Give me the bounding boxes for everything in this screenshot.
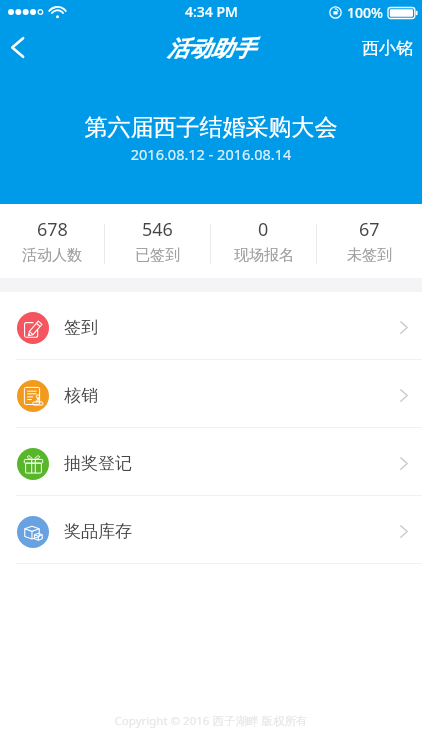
button[interactable]: 签到 [0, 292, 422, 359]
staticText: 签到 [64, 317, 98, 338]
button[interactable]: 678 [0, 204, 104, 278]
button[interactable]: 546 [105, 204, 210, 278]
button[interactable]: 奖品库存 [0, 496, 422, 563]
staticText: 未签到 [347, 246, 392, 265]
staticText: 546 [142, 217, 173, 242]
button[interactable]: 67 [317, 204, 422, 278]
staticText: Copyright © 2016 西子湖畔 版权所有 [0, 713, 422, 729]
staticText: 67 [359, 217, 380, 242]
button[interactable]: 0 [211, 204, 316, 278]
staticText: 现场报名 [234, 246, 294, 265]
button[interactable]: Back [0, 24, 44, 72]
button[interactable]: 抽奖登记 [0, 428, 422, 495]
button[interactable]: 西小铭 [350, 24, 422, 72]
staticText: 100% [347, 3, 383, 22]
staticText: 2016.08.12 - 2016.08.14 [0, 144, 422, 164]
staticText: 第六届西子结婚采购大会 [0, 113, 422, 142]
staticText: 核销 [64, 385, 98, 406]
staticText: 活动助手 [167, 35, 255, 63]
staticText: 已签到 [135, 246, 180, 265]
staticText: 抽奖登记 [64, 453, 132, 474]
staticText: 678 [37, 217, 68, 242]
staticText: 活动人数 [22, 246, 82, 265]
button[interactable]: 核销 [0, 360, 422, 427]
staticText: 4:34 PM [185, 2, 238, 21]
staticText: 0 [258, 217, 269, 242]
staticText: 西小铭 [362, 38, 413, 59]
staticText: 奖品库存 [64, 521, 132, 542]
